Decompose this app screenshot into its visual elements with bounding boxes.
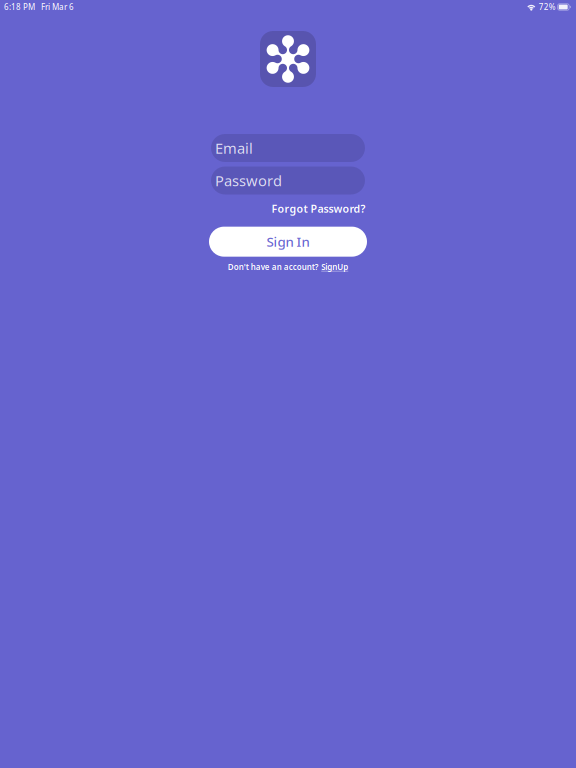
button[interactable]: Forgot Password? <box>271 199 365 218</box>
button[interactable]: Password <box>211 166 365 194</box>
button[interactable]: GoTo <box>260 31 316 87</box>
staticText: 6:18 PM <box>4 2 35 12</box>
staticText: Fri Mar 6 <box>41 2 74 12</box>
staticText: Sign In <box>266 233 309 250</box>
staticText: Password <box>215 171 282 190</box>
button[interactable]: Sign In <box>209 227 367 257</box>
button[interactable]: SignUp <box>321 262 348 272</box>
staticText: Don't have an account? <box>228 262 319 272</box>
staticText: Forgot Password? <box>271 201 365 216</box>
staticText: SignUp <box>321 262 348 272</box>
staticText: Email <box>215 138 253 158</box>
button[interactable]: Email <box>211 134 365 162</box>
staticText: 72% <box>539 2 556 12</box>
